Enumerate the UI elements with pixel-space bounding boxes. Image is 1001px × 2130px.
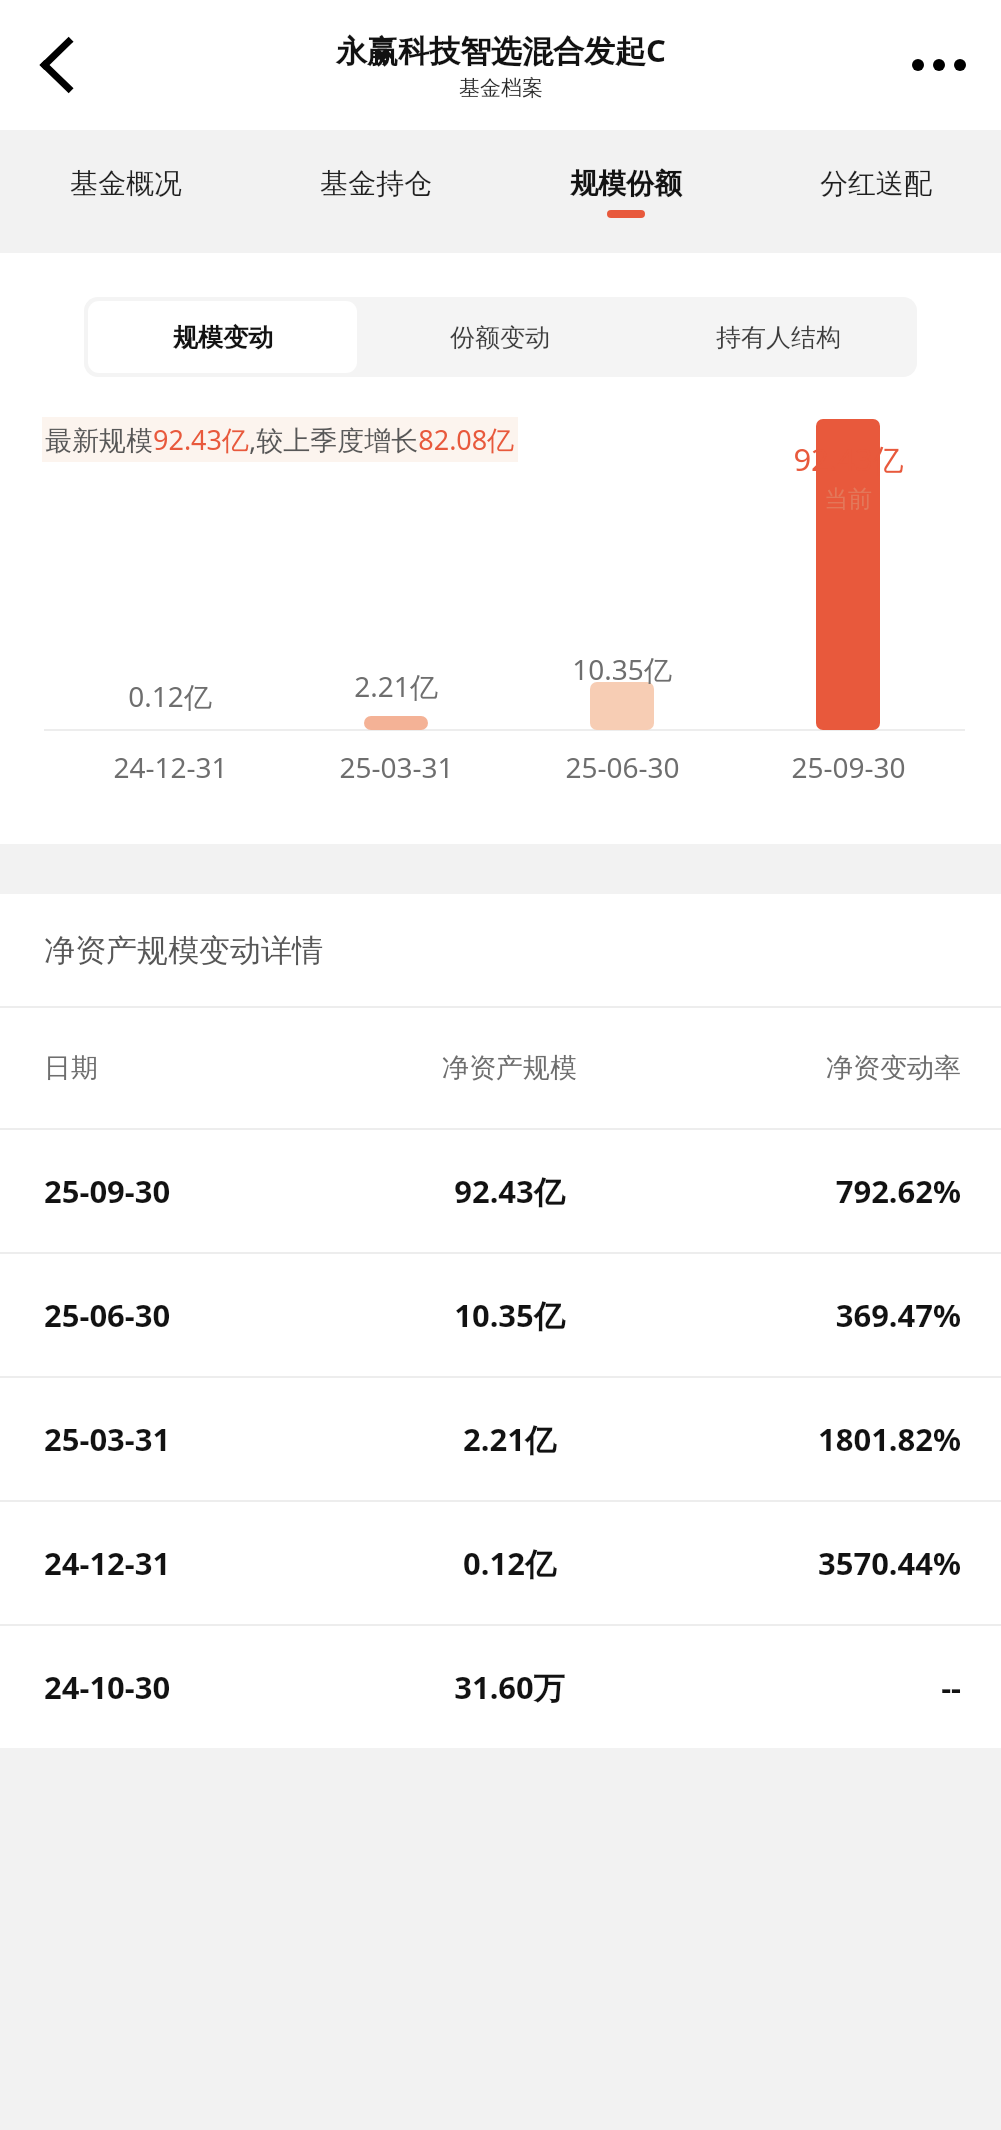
button[interactable]: 分红送配 [751,130,1001,253]
button[interactable]: 24-12-31 [0,1502,1001,1624]
staticText: 规模变动 [173,322,273,353]
staticText: 日期 [44,1051,98,1085]
staticText: 25-09-30 [791,748,906,786]
staticText: 净资产规模 [442,1051,577,1085]
staticText: 25-06-30 [565,748,680,786]
button[interactable]: 规模份额 [501,130,751,253]
button[interactable]: 基金持仓 [251,130,501,253]
staticText: 25-09-30 [44,1170,171,1212]
button[interactable]: 持有人结构 [643,301,913,373]
staticText: 3570.44% [817,1542,961,1584]
staticText: 1801.82% [817,1418,961,1460]
staticText: 净资产规模变动详情 [44,931,323,970]
staticText: 基金持仓 [320,166,432,201]
staticText: 份额变动 [450,322,550,353]
button[interactable]: 25-03-31 [0,1378,1001,1500]
staticText: 31.60万 [454,1666,565,1708]
button[interactable]: 份额变动 [365,301,635,373]
staticText: -- [941,1666,961,1708]
staticText: 92.43亿 [793,438,904,480]
staticText: 24-10-30 [44,1666,171,1708]
button[interactable]: 日期 [0,1008,1001,1128]
button[interactable]: 规模变动 [88,301,357,373]
staticText: 持有人结构 [716,322,841,353]
staticText: 基金概况 [70,166,182,201]
staticText: 92.43亿 [454,1170,565,1212]
button[interactable]: 25-06-30 [0,1254,1001,1376]
staticText: 最新规模92.43亿,较上季度增长82.08亿 [45,421,515,458]
button[interactable]: More options [895,21,983,109]
staticText: 0.12亿 [128,677,212,715]
button[interactable]: Back [8,17,104,113]
staticText: 2.21亿 [463,1418,556,1460]
staticText: 24-12-31 [113,748,228,786]
staticText: 0.12亿 [463,1542,556,1584]
staticText: 2.21亿 [354,667,438,705]
staticText: 分红送配 [820,166,932,201]
staticText: 24-12-31 [44,1542,171,1584]
button[interactable]: 24-10-30 [0,1626,1001,1748]
staticText: 规模份额 [570,166,682,201]
staticText: 永赢科技智选混合发起C [336,29,666,71]
staticText: 当前 [824,484,872,514]
staticText: 25-03-31 [44,1418,171,1460]
staticText: 10.35亿 [572,650,672,688]
staticText: 基金档案 [459,75,543,101]
staticText: 25-03-31 [339,748,454,786]
button[interactable]: 25-09-30 [0,1130,1001,1252]
staticText: 792.62% [835,1170,961,1212]
button[interactable]: 基金概况 [0,130,251,253]
staticText: 净资变动率 [826,1051,961,1085]
staticText: 25-06-30 [44,1294,171,1336]
staticText: 10.35亿 [454,1294,565,1336]
staticText: 369.47% [835,1294,961,1336]
